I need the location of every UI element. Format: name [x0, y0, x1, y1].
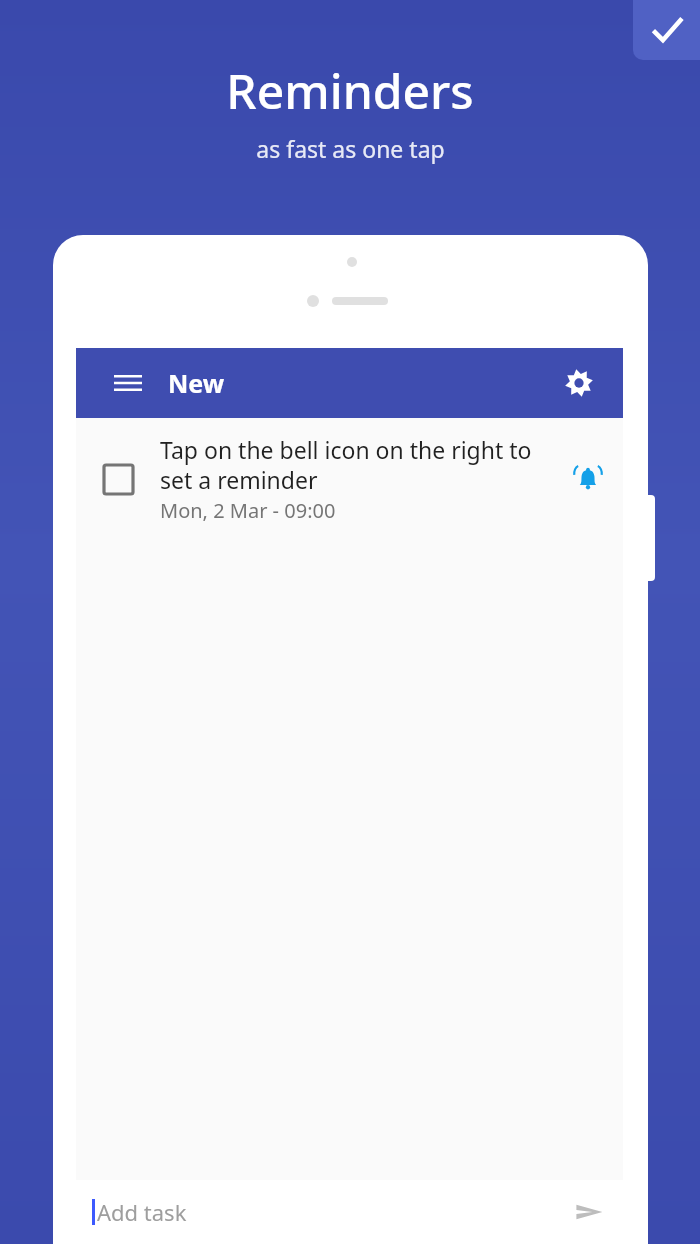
button[interactable]: Menu: [108, 363, 148, 403]
button[interactable]: Send: [561, 1184, 617, 1240]
button[interactable]: Set reminder: [553, 441, 623, 517]
staticText: New: [168, 366, 225, 400]
button[interactable]: Add task: [76, 1180, 623, 1244]
staticText: Reminders: [226, 58, 474, 123]
button[interactable]: Toggle task: [76, 441, 160, 517]
button[interactable]: Toggle task: [76, 434, 623, 524]
staticText: Tap on the bell icon on the right to set…: [160, 434, 553, 495]
staticText: Add task: [97, 1197, 187, 1227]
staticText: as fast as one tap: [256, 133, 445, 164]
staticText: Mon, 2 Mar - 09:00: [160, 497, 336, 524]
button[interactable]: Done: [633, 0, 700, 60]
button[interactable]: Settings: [555, 359, 603, 407]
